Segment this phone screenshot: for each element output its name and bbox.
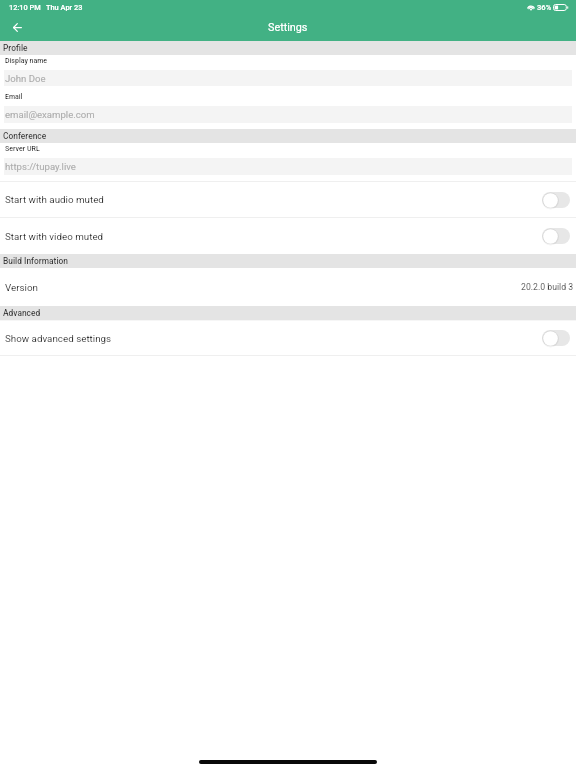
staticText: Settings — [268, 21, 308, 34]
staticText: 20.2.0 build 3 — [521, 282, 574, 292]
staticText: Start with audio muted — [5, 194, 104, 205]
staticText: 12:10 PM — [9, 3, 41, 12]
staticText: Display name — [5, 57, 48, 65]
staticText: https://tupay.live — [5, 161, 76, 172]
button[interactable]: Start with video muted — [0, 218, 576, 254]
staticText: Thu Apr 23 — [46, 3, 83, 12]
staticText: Server URL — [5, 145, 40, 153]
button[interactable]: https://tupay.live — [4, 158, 572, 175]
staticText: Email — [5, 93, 23, 101]
staticText: email@example.com — [5, 109, 95, 120]
staticText: Advanced — [3, 308, 41, 318]
button[interactable]: Start with audio muted — [0, 182, 576, 217]
staticText: Profile — [3, 43, 28, 53]
button[interactable]: Version — [0, 268, 576, 306]
button[interactable]: John Doe — [4, 70, 572, 86]
staticText: 36% — [537, 3, 552, 12]
staticText: John Doe — [5, 73, 46, 84]
staticText: Version — [5, 282, 38, 293]
staticText: Build Information — [3, 256, 68, 266]
button[interactable]: email@example.com — [4, 106, 572, 123]
staticText: Show advanced settings — [5, 333, 112, 344]
staticText: Start with video muted — [5, 231, 104, 242]
button[interactable]: Show advanced settings — [0, 321, 576, 355]
staticText: Conference — [3, 131, 47, 141]
button[interactable]: Back — [0, 14, 35, 41]
